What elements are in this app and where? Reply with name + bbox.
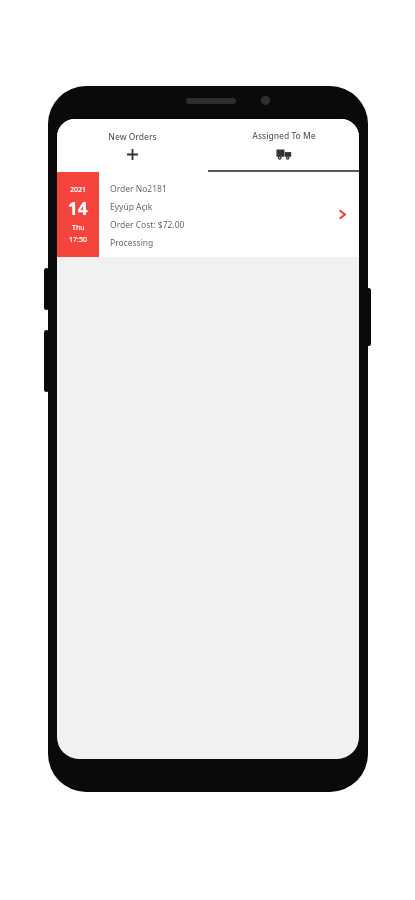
staticText: 2021	[70, 185, 87, 195]
staticText: Processing	[110, 237, 154, 249]
button[interactable]: Assigned To Me	[208, 119, 359, 172]
button[interactable]: New Orders	[57, 119, 208, 172]
staticText: 17:50	[69, 235, 87, 245]
staticText: Assigned To Me	[252, 130, 316, 142]
staticText: Order No2181	[110, 183, 167, 195]
button[interactable]: 2021	[57, 172, 359, 257]
staticText: New Orders	[108, 131, 157, 143]
staticText: Thu	[72, 223, 85, 233]
staticText: 14	[68, 197, 88, 220]
staticText: Order Cost: $72.00	[110, 219, 185, 231]
button[interactable]: Open order details	[325, 172, 359, 257]
staticText: Eyyüp Açık	[110, 201, 153, 213]
